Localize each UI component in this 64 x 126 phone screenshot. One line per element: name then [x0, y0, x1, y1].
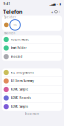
button[interactable]: Add	[50, 9, 54, 14]
staticText: Telefon	[3, 8, 22, 15]
staticText: ADMC Sample	[11, 88, 29, 91]
staticText: 9:41	[3, 2, 10, 6]
staticText: ADMC Sample	[11, 105, 29, 108]
button[interactable]: Recent Music	[2, 35, 62, 44]
button[interactable]: ADMC Sample	[2, 85, 62, 94]
staticText: ▁▃▅ ⌁ ▮	[49, 2, 60, 5]
button[interactable]: Speicher	[2, 15, 62, 31]
staticText: All Items Summary	[11, 79, 34, 83]
staticText: ADMC Records	[11, 96, 31, 100]
staticText: ⋮	[58, 10, 61, 13]
staticText: Favoriten	[3, 31, 15, 35]
button[interactable]: ADMC Records	[2, 94, 62, 102]
staticText: Snoozed	[11, 55, 23, 58]
staticText: Speicher	[4, 15, 16, 19]
staticText: Recent Music	[11, 38, 29, 41]
button[interactable]: ADMC Sample	[2, 102, 62, 111]
button[interactable]: A-Z Integrations	[2, 68, 62, 77]
staticText: Show more	[24, 112, 39, 116]
staticText: 70%	[14, 24, 17, 26]
button[interactable]: Search	[54, 9, 58, 14]
button[interactable]: Smart Folder	[2, 44, 62, 52]
staticText: Smart Folder	[11, 46, 27, 50]
staticText: +	[51, 9, 53, 14]
button[interactable]: More	[58, 9, 61, 14]
button[interactable]: Snoozed	[2, 52, 62, 61]
button[interactable]: All Items Summary	[2, 77, 62, 85]
staticText: A-Z Integrations	[11, 71, 34, 74]
